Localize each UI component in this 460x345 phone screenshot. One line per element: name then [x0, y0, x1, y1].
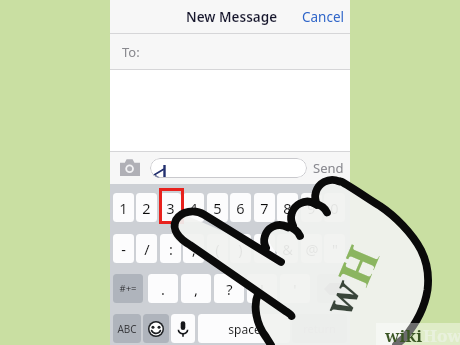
button[interactable]: 8 [277, 193, 298, 222]
button[interactable]: : [160, 234, 181, 263]
staticText: space [228, 321, 261, 337]
button[interactable]: return [292, 314, 347, 343]
button[interactable] [150, 158, 307, 178]
button[interactable]: Take photo [120, 159, 140, 176]
staticText: : [169, 239, 173, 259]
button[interactable]: ; [183, 234, 204, 263]
staticText: ( [215, 239, 220, 259]
staticText: " [332, 239, 338, 259]
button[interactable]: 0 [324, 193, 345, 222]
button[interactable]: ? [214, 274, 244, 303]
staticText: H [323, 237, 380, 289]
button[interactable]: 7 [254, 193, 275, 222]
staticText: How [423, 324, 460, 345]
button[interactable]: ( [207, 234, 228, 263]
staticText: wiki [385, 324, 423, 345]
staticText: & [282, 239, 293, 259]
button[interactable]: Emoji [143, 314, 169, 343]
button[interactable]: 3 [160, 193, 181, 222]
button[interactable]: - [113, 234, 134, 263]
button[interactable]: Dictation [171, 314, 195, 343]
staticText: 6 [236, 198, 245, 218]
staticText: 4 [189, 198, 198, 218]
staticText: w [310, 271, 366, 320]
button[interactable]: 9 [301, 193, 322, 222]
staticText: 5 [213, 198, 222, 218]
staticText: Cancel [302, 8, 345, 26]
button[interactable]: , [181, 274, 211, 303]
button[interactable]: 2 [136, 193, 157, 222]
staticText: 8 [283, 198, 292, 218]
staticText: Send [313, 159, 344, 177]
staticText: ? [226, 279, 233, 299]
staticText: 1 [119, 198, 128, 218]
button[interactable]: Delete [317, 274, 347, 303]
staticText: ABC [117, 322, 137, 336]
button[interactable]: ! [247, 274, 277, 303]
staticText: - [121, 239, 126, 259]
button[interactable]: 6 [230, 193, 251, 222]
staticText: . [161, 279, 165, 299]
staticText: ) [238, 239, 243, 259]
staticText: New Message [186, 8, 278, 26]
staticText: 3 [166, 198, 175, 218]
staticText: / [144, 239, 150, 259]
button[interactable]: ) [230, 234, 251, 263]
button[interactable]: space [198, 314, 290, 343]
button[interactable]: Send [313, 159, 344, 177]
button[interactable]: Cancel [302, 8, 345, 26]
button[interactable]: 4 [183, 193, 204, 222]
button[interactable]: ABC [113, 314, 141, 343]
staticText: , [194, 279, 198, 299]
staticText: 0 [330, 198, 339, 218]
staticText: ! [260, 279, 264, 299]
button[interactable]: / [136, 234, 157, 263]
staticText: #+= [119, 282, 137, 295]
staticText: ; [192, 239, 196, 259]
button[interactable]: & [277, 234, 298, 263]
staticText: $ [260, 239, 269, 259]
button[interactable]: To: [110, 34, 350, 69]
button[interactable]: #+= [113, 274, 143, 303]
staticText: @ [305, 239, 319, 259]
staticText: 2 [142, 198, 151, 218]
staticText: 7 [260, 198, 269, 218]
button[interactable]: " [324, 234, 345, 263]
button[interactable]: 5 [207, 193, 228, 222]
button[interactable]: . [148, 274, 178, 303]
button[interactable]: $ [254, 234, 275, 263]
staticText: To: [122, 43, 140, 61]
staticText: 9 [307, 198, 316, 218]
button[interactable]: 1 [113, 193, 134, 222]
button[interactable]: @ [301, 234, 322, 263]
